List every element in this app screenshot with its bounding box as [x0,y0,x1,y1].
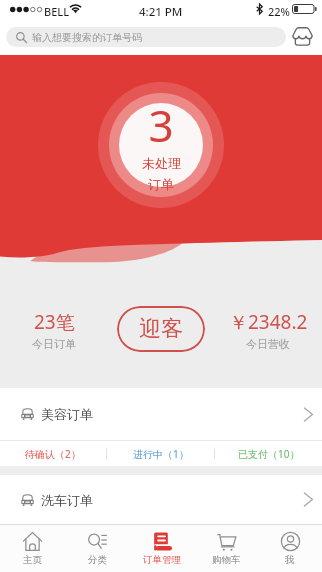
button[interactable]: 待确认（2） [0,441,106,466]
staticText: 输入想要搜索的订单号码 [32,31,142,44]
staticText: 已支付（10） [238,447,300,461]
button[interactable]: 输入想要搜索的订单号码 [6,27,286,47]
button[interactable]: 已支付（10） [215,441,322,466]
button[interactable]: 洗车订单 [0,475,322,524]
staticText: 订单 [148,176,174,192]
staticText: 订单管理 [143,554,181,566]
staticText: BELL [44,4,70,19]
button[interactable]: 订单管理 [130,525,194,572]
staticText: 待确认（2） [25,447,81,461]
button[interactable]: 23笔 [0,283,108,351]
button[interactable]: 分类 [65,525,130,572]
button[interactable]: 进行中（1） [107,441,214,466]
button[interactable]: 我 [258,525,322,572]
staticText: 3 [148,95,174,155]
staticText: 进行中（1） [133,447,189,461]
button[interactable]: 美容订单 [0,388,322,440]
staticText: 4:21 PM [139,4,183,20]
staticText: 22% [268,4,290,19]
button[interactable]: 购物车 [194,525,258,572]
staticText: 美容订单 [41,406,93,422]
button[interactable]: ￥2348.2 [214,283,322,351]
staticText: 未处理 [142,155,181,171]
staticText: ￥2348.2 [229,309,308,335]
staticText: 今日营收 [246,337,290,351]
staticText: 购物车 [212,554,241,566]
staticText: 分类 [88,554,107,566]
staticText: 迎客 [139,315,183,343]
staticText: 今日订单 [32,337,76,351]
button[interactable]: 迎客 [117,306,205,352]
button[interactable]: 主页 [0,525,65,572]
staticText: 我 [285,554,295,566]
staticText: 洗车订单 [41,492,93,508]
staticText: 主页 [23,554,42,566]
staticText: 23笔 [34,309,75,335]
button[interactable]: Shop [292,27,313,46]
